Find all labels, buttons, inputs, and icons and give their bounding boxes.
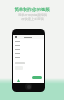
button[interactable] [32, 76, 42, 79]
staticText: 简单好用的视频编辑 器快速上手剪辑 [18, 13, 47, 21]
staticText: 简单制作你的视频 [14, 7, 50, 13]
